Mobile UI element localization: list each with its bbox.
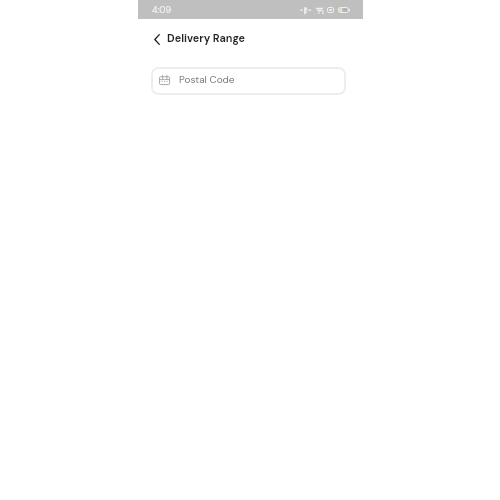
button[interactable]: Back <box>150 31 163 47</box>
staticText: Delivery Range <box>167 31 246 45</box>
staticText: Postal Code <box>179 73 235 86</box>
button[interactable]: Postal Code <box>151 67 346 95</box>
staticText: 4:09 <box>152 4 172 16</box>
